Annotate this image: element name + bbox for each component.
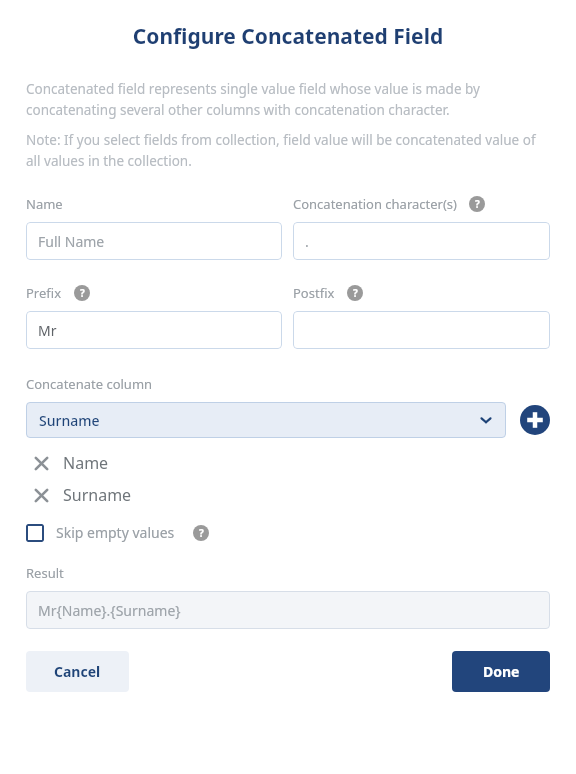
button[interactable]: . <box>293 222 550 260</box>
button[interactable]: Remove Surname <box>34 484 132 506</box>
staticText: Name <box>63 452 109 474</box>
staticText: Configure Concatenated Field <box>26 22 550 51</box>
staticText: Prefix <box>26 284 62 302</box>
staticText: ? <box>475 197 480 211</box>
staticText: Full Name <box>38 232 105 251</box>
button[interactable]: Surname <box>26 402 506 438</box>
staticText: ? <box>199 526 204 540</box>
staticText: Skip empty values <box>56 523 175 542</box>
button[interactable]: Help <box>347 285 363 301</box>
other: Remove Name <box>34 456 49 471</box>
staticText: Result <box>26 564 64 582</box>
staticText: Done <box>483 662 520 681</box>
staticText: Concatenated field represents single val… <box>26 80 550 119</box>
staticText: Name <box>26 195 63 213</box>
staticText: . <box>305 232 309 251</box>
button[interactable] <box>293 311 550 349</box>
button[interactable]: Mr <box>26 311 282 349</box>
button[interactable]: Done <box>452 651 550 692</box>
staticText: Concatenation character(s) <box>293 195 457 213</box>
staticText: Mr <box>38 321 57 340</box>
staticText: Surname <box>39 411 100 430</box>
button[interactable]: Full Name <box>26 222 282 260</box>
staticText: Note: If you select fields from collecti… <box>26 131 550 170</box>
button[interactable]: Remove Name <box>34 452 109 474</box>
button[interactable]: Cancel <box>26 651 129 692</box>
staticText: Cancel <box>54 662 101 681</box>
button[interactable]: Add column <box>520 405 550 435</box>
button[interactable]: Skip empty values <box>26 523 209 542</box>
staticText: Postfix <box>293 284 335 302</box>
staticText: ? <box>353 286 358 300</box>
staticText: Concatenate column <box>26 375 153 393</box>
button[interactable]: Help <box>469 196 485 212</box>
button[interactable]: Help <box>74 285 90 301</box>
other: Remove Surname <box>34 488 49 503</box>
button[interactable]: Help <box>193 525 209 541</box>
staticText: ? <box>80 286 85 300</box>
button[interactable]: Mr{Name}.{Surname} <box>26 591 550 629</box>
staticText: Mr{Name}.{Surname} <box>38 601 181 620</box>
staticText: Surname <box>63 484 132 506</box>
